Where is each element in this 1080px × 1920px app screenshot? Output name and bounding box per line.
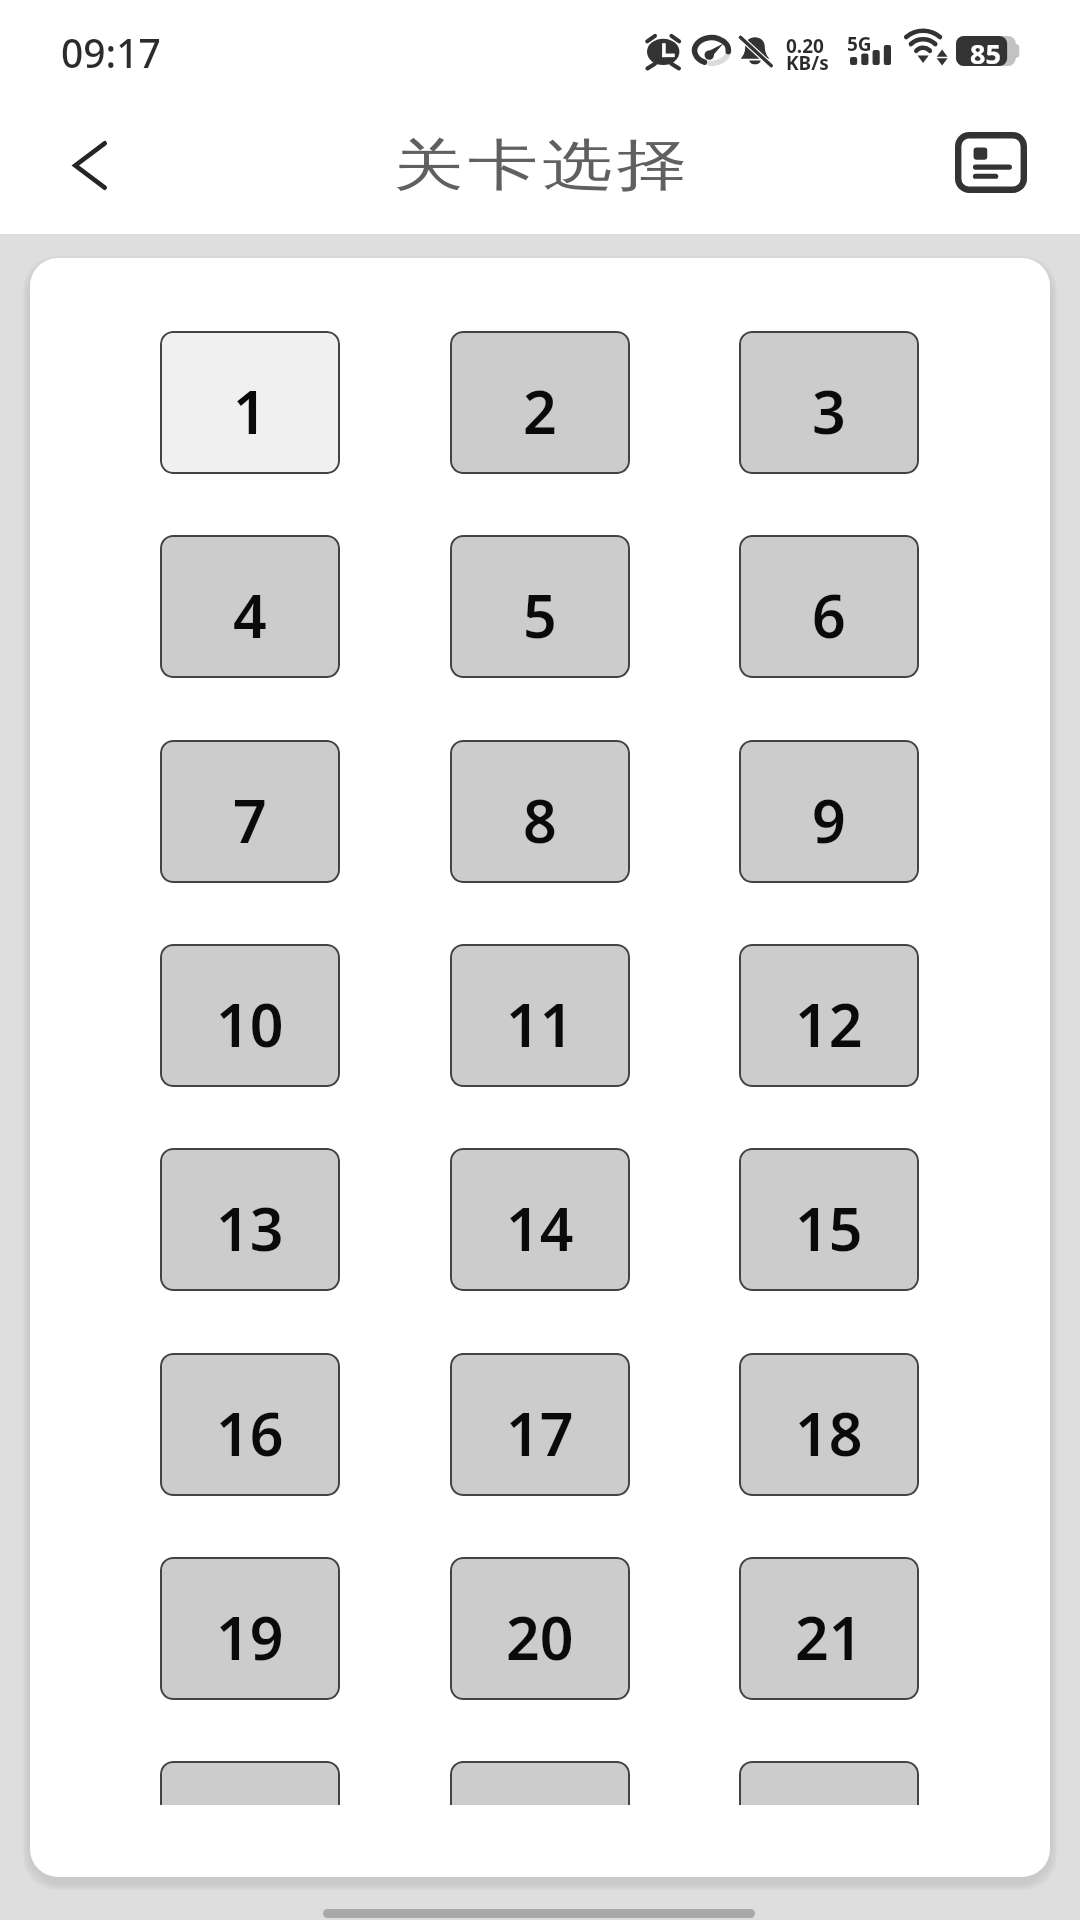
button[interactable]: 8 xyxy=(450,740,630,883)
staticText: 5 xyxy=(523,575,557,655)
staticText: KB/s xyxy=(786,50,829,76)
staticText: 7 xyxy=(233,780,267,860)
button[interactable]: 3 xyxy=(739,331,919,474)
button[interactable]: 11 xyxy=(450,944,630,1087)
button[interactable]: Level info xyxy=(938,110,1043,215)
staticText: 5G xyxy=(847,31,872,57)
button[interactable]: 24 xyxy=(739,1761,919,1805)
button[interactable]: 2 xyxy=(450,331,630,474)
button[interactable]: 14 xyxy=(450,1148,630,1291)
button[interactable]: 7 xyxy=(160,740,340,883)
staticText: 13 xyxy=(216,1188,284,1268)
button[interactable]: 16 xyxy=(160,1353,340,1496)
button[interactable]: 20 xyxy=(450,1557,630,1700)
button[interactable]: 17 xyxy=(450,1353,630,1496)
staticText: 85 xyxy=(970,35,1001,72)
staticText: 关卡选择 xyxy=(391,131,689,201)
button[interactable]: 19 xyxy=(160,1557,340,1700)
staticText: 2 xyxy=(523,371,557,451)
button[interactable]: 22 xyxy=(160,1761,340,1805)
staticText: 3 xyxy=(812,371,846,451)
staticText: 18 xyxy=(795,1393,863,1473)
button[interactable]: Back xyxy=(37,113,142,218)
staticText: 14 xyxy=(506,1188,574,1268)
button[interactable]: 15 xyxy=(739,1148,919,1291)
staticText: 09:17 xyxy=(61,26,161,79)
staticText: 4 xyxy=(233,575,267,655)
button[interactable]: 13 xyxy=(160,1148,340,1291)
staticText: 8 xyxy=(523,780,557,860)
staticText: 17 xyxy=(506,1393,574,1473)
staticText: 16 xyxy=(216,1393,284,1473)
staticText: 10 xyxy=(216,984,284,1064)
button[interactable]: 12 xyxy=(739,944,919,1087)
button[interactable]: 9 xyxy=(739,740,919,883)
staticText: 12 xyxy=(795,984,863,1064)
button[interactable]: 1 xyxy=(160,331,340,474)
button[interactable]: 6 xyxy=(739,535,919,678)
button[interactable]: 5 xyxy=(450,535,630,678)
staticText: 20 xyxy=(506,1597,574,1677)
button[interactable]: 10 xyxy=(160,944,340,1087)
staticText: 11 xyxy=(506,984,574,1064)
button[interactable]: 23 xyxy=(450,1761,630,1805)
staticText: 9 xyxy=(812,780,846,860)
staticText: 6 xyxy=(812,575,846,655)
button[interactable]: 18 xyxy=(739,1353,919,1496)
staticText: 19 xyxy=(216,1597,284,1677)
staticText: 0.20 xyxy=(786,33,824,59)
button[interactable]: 4 xyxy=(160,535,340,678)
staticText: 21 xyxy=(795,1597,863,1677)
button[interactable]: 21 xyxy=(739,1557,919,1700)
staticText: 1 xyxy=(233,371,267,451)
staticText: 15 xyxy=(795,1188,863,1268)
